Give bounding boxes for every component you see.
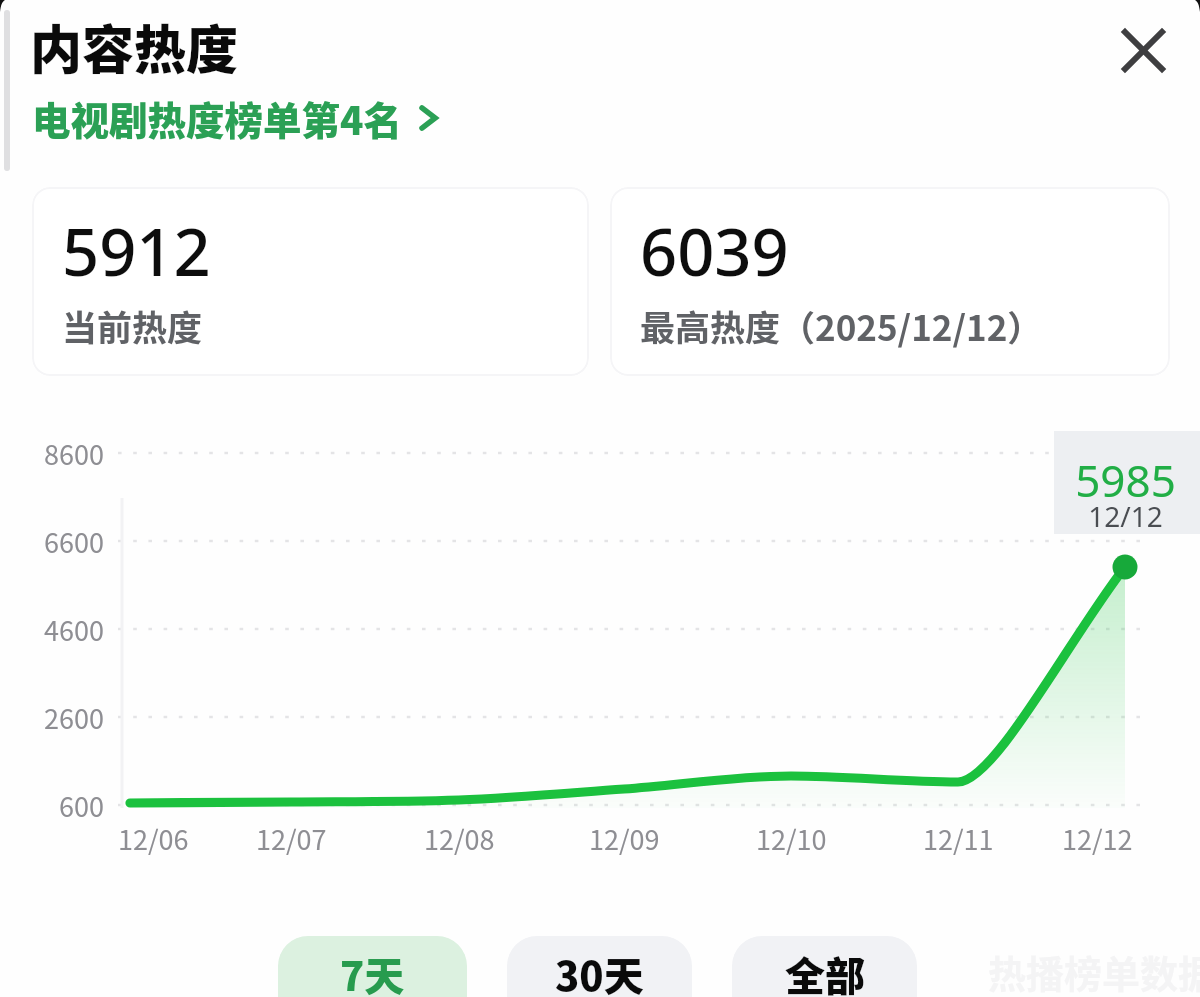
staticText: 当前热度: [62, 300, 203, 351]
staticText: 6600: [44, 522, 104, 561]
staticText: 电视剧热度榜单第4名: [32, 90, 402, 146]
staticText: 4600: [44, 610, 104, 649]
staticText: 全部: [785, 945, 865, 997]
staticText: 热播榜单数据: [988, 944, 1200, 997]
staticText: 12/12: [1062, 819, 1133, 858]
button[interactable]: 6039: [610, 187, 1170, 376]
staticText: 5985: [1075, 450, 1176, 502]
staticText: 2600: [44, 698, 104, 737]
staticText: 12/08: [424, 819, 495, 858]
button[interactable]: 5912: [32, 187, 589, 376]
staticText: 8600: [44, 434, 104, 473]
staticText: 30天: [555, 945, 644, 997]
staticText: 12/12: [1088, 497, 1163, 531]
button[interactable]: 电视剧热度榜单第4名: [32, 90, 443, 146]
staticText: 600: [59, 786, 104, 825]
button[interactable]: Close: [1111, 18, 1175, 82]
button[interactable]: 30天: [507, 936, 692, 997]
staticText: 内容热度: [30, 9, 239, 84]
staticText: 12/11: [923, 819, 994, 858]
staticText: 6039: [640, 207, 789, 296]
staticText: 12/06: [118, 819, 189, 858]
button[interactable]: 全部: [732, 936, 917, 997]
staticText: 12/10: [756, 819, 827, 858]
staticText: 最高热度（2025/12/12）: [640, 300, 1043, 351]
staticText: 12/09: [589, 819, 660, 858]
staticText: 5912: [62, 207, 211, 296]
button[interactable]: 7天: [278, 936, 467, 997]
staticText: 12/07: [256, 819, 327, 858]
staticText: 7天: [340, 945, 405, 997]
